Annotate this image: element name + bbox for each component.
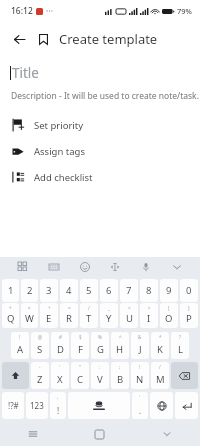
staticText: & [138, 334, 142, 340]
staticText: E [46, 312, 52, 325]
staticText: M [156, 373, 165, 386]
staticText: G [97, 343, 104, 356]
button[interactable]: Emoji [76, 258, 94, 276]
button[interactable]: ] [180, 303, 198, 328]
button[interactable]: 1 [2, 279, 19, 302]
button[interactable]: !?# [2, 392, 24, 419]
staticText: I [147, 312, 151, 325]
staticText: 8 [146, 284, 152, 297]
button[interactable]: Add checklist [0, 164, 200, 190]
button[interactable]: Hide keyboard [168, 258, 186, 276]
staticText: ! [57, 405, 60, 416]
staticText: × [28, 305, 31, 311]
button[interactable]: Set priority [0, 112, 200, 138]
staticText: L [178, 343, 183, 356]
staticText: # [59, 334, 62, 340]
button[interactable]: & [131, 332, 149, 359]
staticText: 9 [166, 284, 172, 297]
button[interactable]: 6 [100, 279, 118, 302]
button[interactable]: " [71, 362, 89, 389]
staticText: Create template [59, 30, 158, 48]
button[interactable]: 8 [140, 279, 158, 302]
button[interactable]: 4 [60, 279, 78, 302]
button[interactable]: Back [6, 26, 32, 52]
button[interactable]: 0 [180, 279, 198, 302]
button[interactable]: 3 [40, 279, 58, 302]
button[interactable]: _ [100, 303, 118, 328]
button[interactable]: Home [66, 422, 133, 446]
staticText: _ [108, 305, 110, 311]
button[interactable]: Text edit [106, 258, 124, 276]
staticText: Z [37, 373, 43, 386]
staticText: N [136, 373, 144, 386]
staticText: ' [139, 394, 141, 400]
button[interactable]: , [50, 392, 66, 419]
button[interactable]: 5 [80, 279, 98, 302]
staticText: , [57, 394, 59, 400]
staticText: P [186, 312, 192, 325]
button[interactable]: ! [131, 362, 149, 389]
button[interactable]: 7 [120, 279, 138, 302]
button[interactable]: / [80, 303, 98, 328]
button[interactable]: $ [71, 332, 89, 359]
button[interactable]: Template bookmark [32, 28, 54, 50]
staticText: Add checklist [34, 171, 93, 184]
staticText: X [57, 373, 63, 386]
staticText: 0 [186, 284, 192, 297]
button[interactable]: > [140, 303, 158, 328]
button[interactable]: Voice input [137, 258, 155, 276]
staticText: F [78, 343, 83, 356]
staticText: !?# [8, 400, 19, 411]
staticText: 5 [86, 284, 92, 297]
button[interactable]: - [31, 362, 49, 389]
button[interactable]: Backspace [171, 362, 198, 389]
button[interactable]: ^ [111, 332, 129, 359]
staticText: D [57, 343, 64, 356]
button[interactable]: Assign tags [0, 138, 200, 164]
staticText: [ [168, 305, 170, 311]
button[interactable]: [ [160, 303, 178, 328]
button[interactable]: ! [11, 332, 29, 359]
button[interactable]: ? [171, 332, 189, 359]
button[interactable]: # [51, 332, 69, 359]
button[interactable]: Keyboard layout [45, 258, 63, 276]
button[interactable]: @ [31, 332, 49, 359]
button[interactable]: 2 [21, 279, 38, 302]
button[interactable]: ' [51, 362, 69, 389]
staticText: . [139, 405, 142, 416]
button[interactable]: Stickers [14, 258, 32, 276]
button[interactable]: × [21, 303, 38, 328]
staticText: 2 [27, 284, 33, 297]
button[interactable]: < [120, 303, 138, 328]
button[interactable]: Space [68, 392, 130, 419]
staticText: 6 [106, 284, 112, 297]
staticText: 16:12 [11, 5, 33, 17]
button[interactable]: ÷ [40, 303, 58, 328]
button[interactable]: 9 [160, 279, 178, 302]
staticText: / [159, 364, 161, 370]
button[interactable]: 123 [26, 392, 48, 419]
staticText: * [159, 334, 162, 340]
button[interactable]: % [91, 332, 109, 359]
button[interactable]: + [2, 303, 19, 328]
button[interactable]: Enter [175, 392, 198, 419]
button[interactable]: * [151, 332, 169, 359]
button[interactable]: ; [111, 362, 129, 389]
button[interactable]: Back [133, 422, 200, 446]
button[interactable]: Shift [2, 362, 29, 389]
staticText: 3 [46, 284, 52, 297]
staticText: T [86, 312, 92, 325]
button[interactable]: Language [150, 392, 173, 419]
staticText: ÷ [48, 305, 51, 311]
button[interactable]: ' [132, 392, 148, 419]
button[interactable]: Recents [0, 422, 66, 446]
staticText: ! [19, 334, 21, 340]
button[interactable]: = [60, 303, 78, 328]
staticText: : [99, 364, 101, 370]
staticText: 1 [8, 284, 14, 297]
button[interactable]: / [151, 362, 169, 389]
staticText: R [66, 312, 72, 325]
staticText: ] [188, 305, 190, 311]
button[interactable]: : [91, 362, 109, 389]
staticText: B [117, 373, 124, 386]
